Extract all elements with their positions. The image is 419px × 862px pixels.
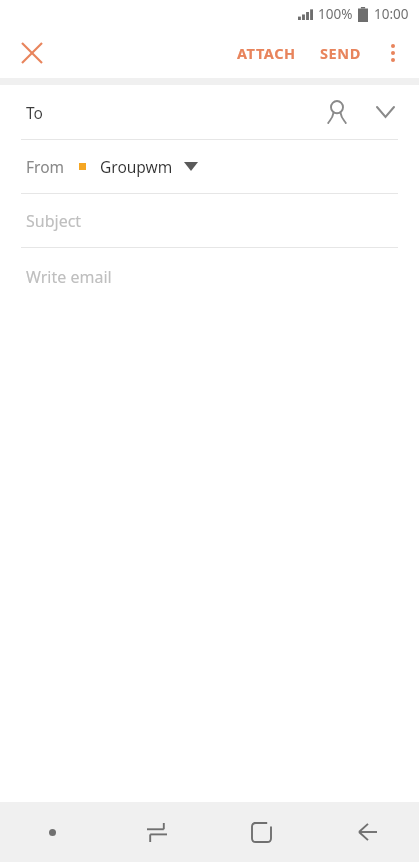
button[interactable]: More options [371, 31, 415, 75]
button[interactable]: From [0, 140, 419, 193]
staticText: 10:00 [374, 5, 409, 23]
staticText: Subject [26, 210, 82, 232]
button[interactable]: Close [8, 29, 56, 77]
button[interactable]: ATTACH [227, 31, 306, 75]
button[interactable]: Write email [0, 248, 419, 306]
button[interactable]: Subject [0, 194, 419, 247]
staticText: SEND [320, 43, 361, 63]
button[interactable]: Hide navigation bar [0, 802, 104, 862]
staticText: To [26, 102, 43, 123]
button[interactable]: Back [314, 802, 419, 862]
button[interactable]: Add recipient from contacts [317, 92, 357, 132]
button[interactable]: Recent apps [104, 802, 209, 862]
staticText: From [26, 156, 65, 177]
button[interactable]: Home [209, 802, 314, 862]
staticText: 100% [318, 5, 353, 23]
staticText: ATTACH [237, 43, 296, 63]
button[interactable]: To [0, 85, 419, 139]
staticText: Write email [26, 266, 112, 288]
button[interactable]: SEND [310, 31, 371, 75]
staticText: Groupwm [100, 156, 173, 177]
button[interactable]: Expand recipients [365, 92, 405, 132]
